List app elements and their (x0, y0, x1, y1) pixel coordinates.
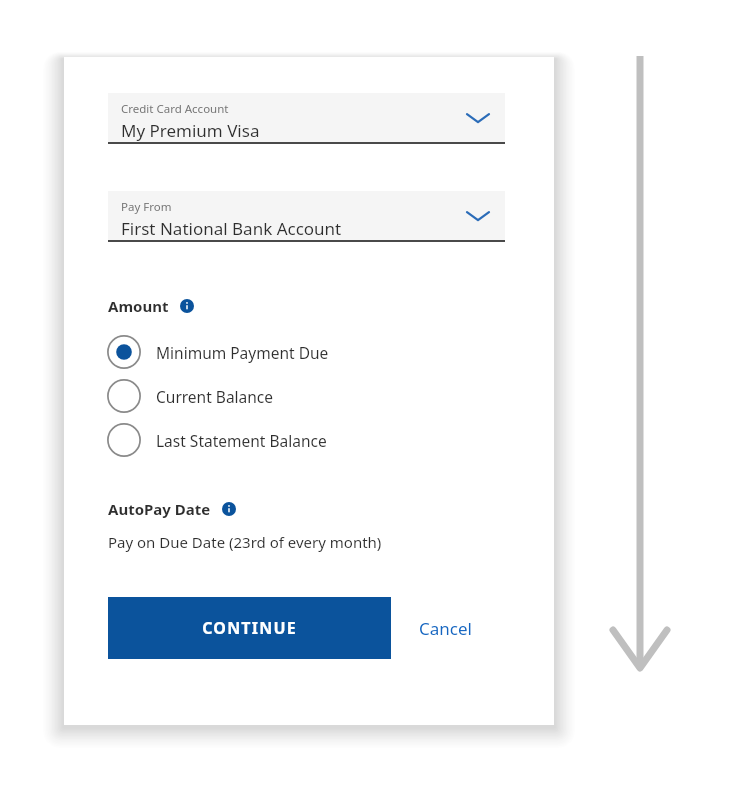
button[interactable]: Minimum Payment Due (102, 335, 329, 369)
staticText: AutoPay Date (108, 499, 211, 519)
staticText: CONTINUE (202, 617, 297, 639)
staticText: My Premium Visa (121, 119, 260, 142)
staticText: Pay on Due Date (23rd of every month) (108, 532, 382, 552)
staticText: Last Statement Balance (156, 430, 327, 451)
button[interactable]: More information (219, 499, 239, 519)
button[interactable]: Cancel (391, 597, 500, 659)
staticText: Current Balance (156, 386, 274, 407)
button[interactable]: Credit Card Account (108, 93, 505, 144)
staticText: Credit Card Account (121, 101, 229, 117)
button[interactable]: Pay From (108, 191, 505, 242)
button[interactable]: More information (177, 296, 197, 316)
button[interactable]: Current Balance (102, 379, 274, 413)
staticText: First National Bank Account (121, 217, 342, 240)
staticText: Cancel (419, 617, 472, 640)
staticText: Minimum Payment Due (156, 342, 329, 363)
button[interactable]: Last Statement Balance (102, 423, 327, 457)
staticText: Amount (108, 296, 169, 316)
staticText: Pay From (121, 199, 172, 215)
button[interactable]: CONTINUE (108, 597, 391, 659)
